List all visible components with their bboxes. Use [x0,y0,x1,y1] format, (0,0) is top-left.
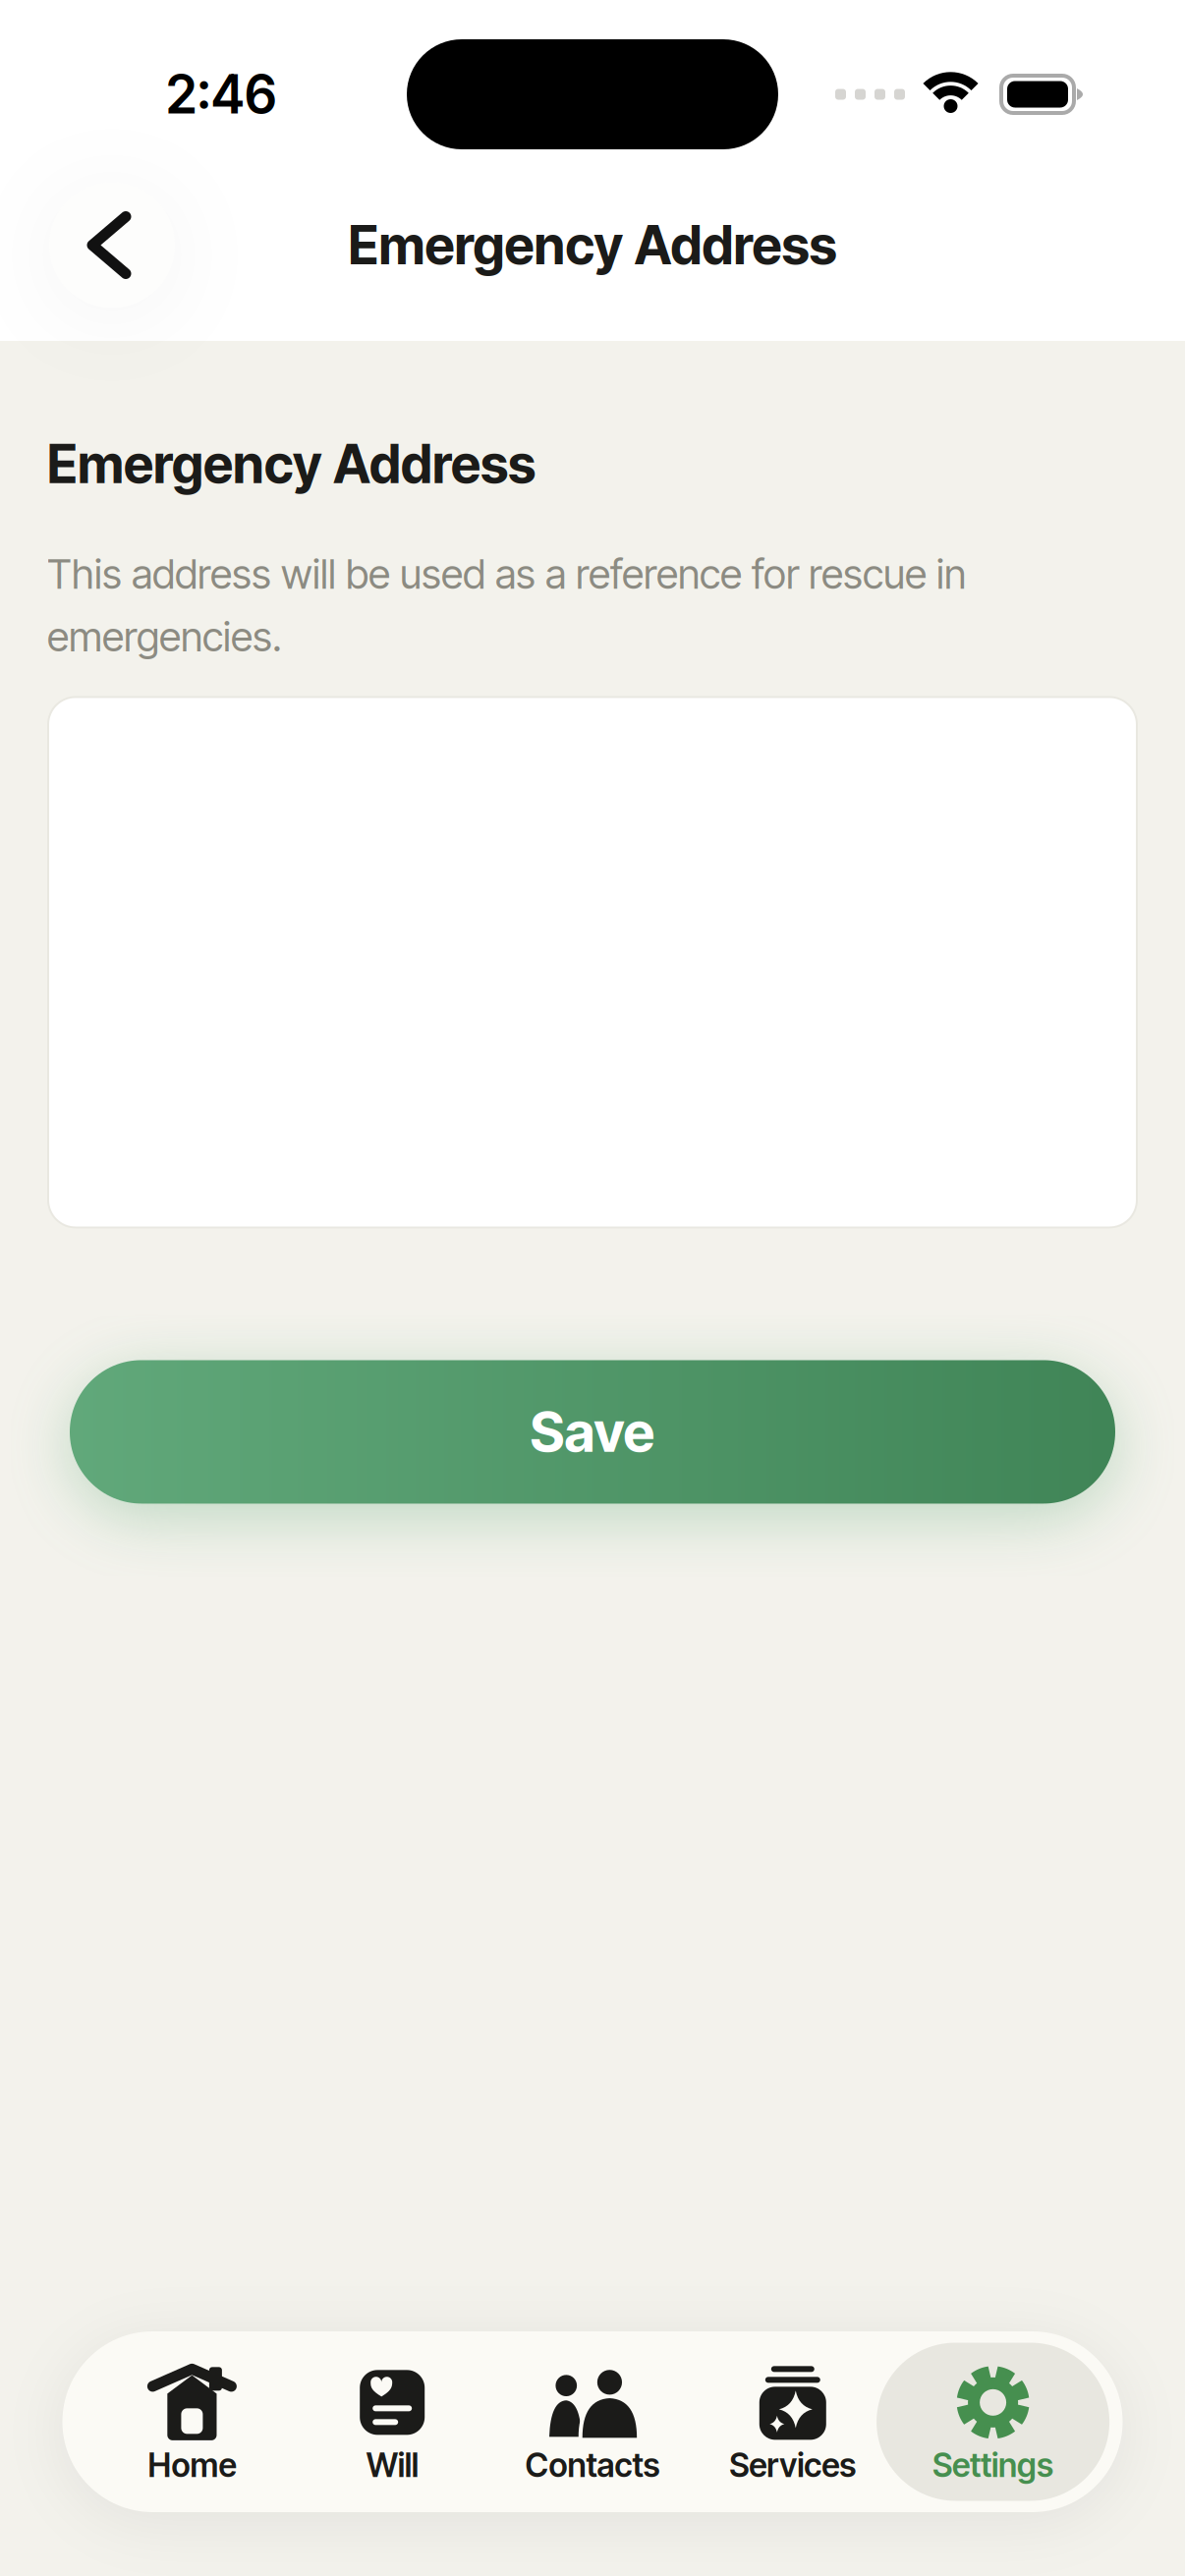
staticText: 2:46 [166,63,277,125]
staticText: Settings [933,2446,1053,2484]
button[interactable]: Contacts [492,2331,693,2512]
button[interactable]: Settings [893,2331,1093,2512]
staticText: Will [366,2446,418,2484]
staticText: Save [530,1399,655,1464]
staticText: This address will be used as a reference… [47,550,966,661]
staticText: Home [148,2446,236,2484]
staticText: Services [729,2446,856,2484]
staticText: Contacts [525,2446,660,2484]
button[interactable]: Services [693,2331,893,2512]
button[interactable]: Home [92,2331,292,2512]
button[interactable]: Save [70,1360,1115,1504]
staticText: Emergency Address [47,433,536,495]
button[interactable]: Back [49,182,175,308]
button[interactable]: Will [292,2331,492,2512]
staticText: Emergency Address [348,214,837,276]
